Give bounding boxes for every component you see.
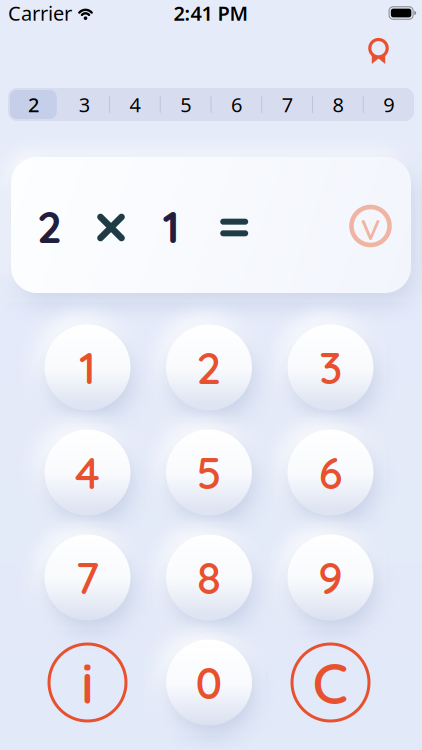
- staticText: 2: [28, 91, 39, 118]
- button[interactable]: 9: [287, 534, 373, 620]
- staticText: 6: [318, 445, 342, 500]
- button[interactable]: 5: [160, 88, 211, 121]
- button[interactable]: 6: [287, 429, 373, 515]
- staticText: 0: [195, 655, 222, 710]
- button[interactable]: 2: [166, 324, 252, 410]
- staticText: 2: [37, 199, 62, 254]
- staticText: 7: [282, 91, 293, 118]
- staticText: 5: [180, 91, 191, 118]
- staticText: Carrier: [8, 0, 72, 26]
- staticText: 1: [79, 340, 96, 395]
- staticText: 2:41 PM: [173, 0, 248, 26]
- staticText: 6: [231, 91, 242, 118]
- button[interactable]: 4: [44, 429, 130, 515]
- staticText: 3: [319, 340, 342, 395]
- button[interactable]: 8: [166, 534, 252, 620]
- staticText: 4: [129, 91, 140, 118]
- staticText: 8: [332, 91, 343, 118]
- staticText: 7: [75, 550, 99, 605]
- staticText: 9: [318, 550, 343, 605]
- button[interactable]: Info: [44, 639, 130, 725]
- staticText: 8: [197, 550, 221, 605]
- staticText: 4: [75, 445, 100, 500]
- staticText: v: [360, 203, 380, 249]
- staticText: 3: [79, 91, 90, 118]
- button[interactable]: 0: [166, 639, 252, 725]
- button[interactable]: 7: [262, 88, 313, 121]
- button[interactable]: 5: [166, 429, 252, 515]
- staticText: 1: [162, 199, 179, 254]
- button[interactable]: Clear: [287, 639, 373, 725]
- button[interactable]: 3: [287, 324, 373, 410]
- button[interactable]: 6: [211, 88, 262, 121]
- staticText: 9: [383, 91, 394, 118]
- button[interactable]: 3: [59, 88, 110, 121]
- button[interactable]: 2: [8, 88, 59, 121]
- button[interactable]: 9: [363, 88, 414, 121]
- staticText: 5: [196, 445, 221, 500]
- staticText: 2: [196, 340, 221, 395]
- button[interactable]: 4: [109, 88, 160, 121]
- button[interactable]: Bookmarks: [369, 39, 388, 64]
- staticText: C: [312, 647, 348, 717]
- button[interactable]: 7: [44, 534, 130, 620]
- button[interactable]: 1: [44, 324, 130, 410]
- button[interactable]: 8: [312, 88, 363, 121]
- staticText: i: [81, 647, 94, 717]
- button[interactable]: Check answer: [348, 204, 392, 248]
